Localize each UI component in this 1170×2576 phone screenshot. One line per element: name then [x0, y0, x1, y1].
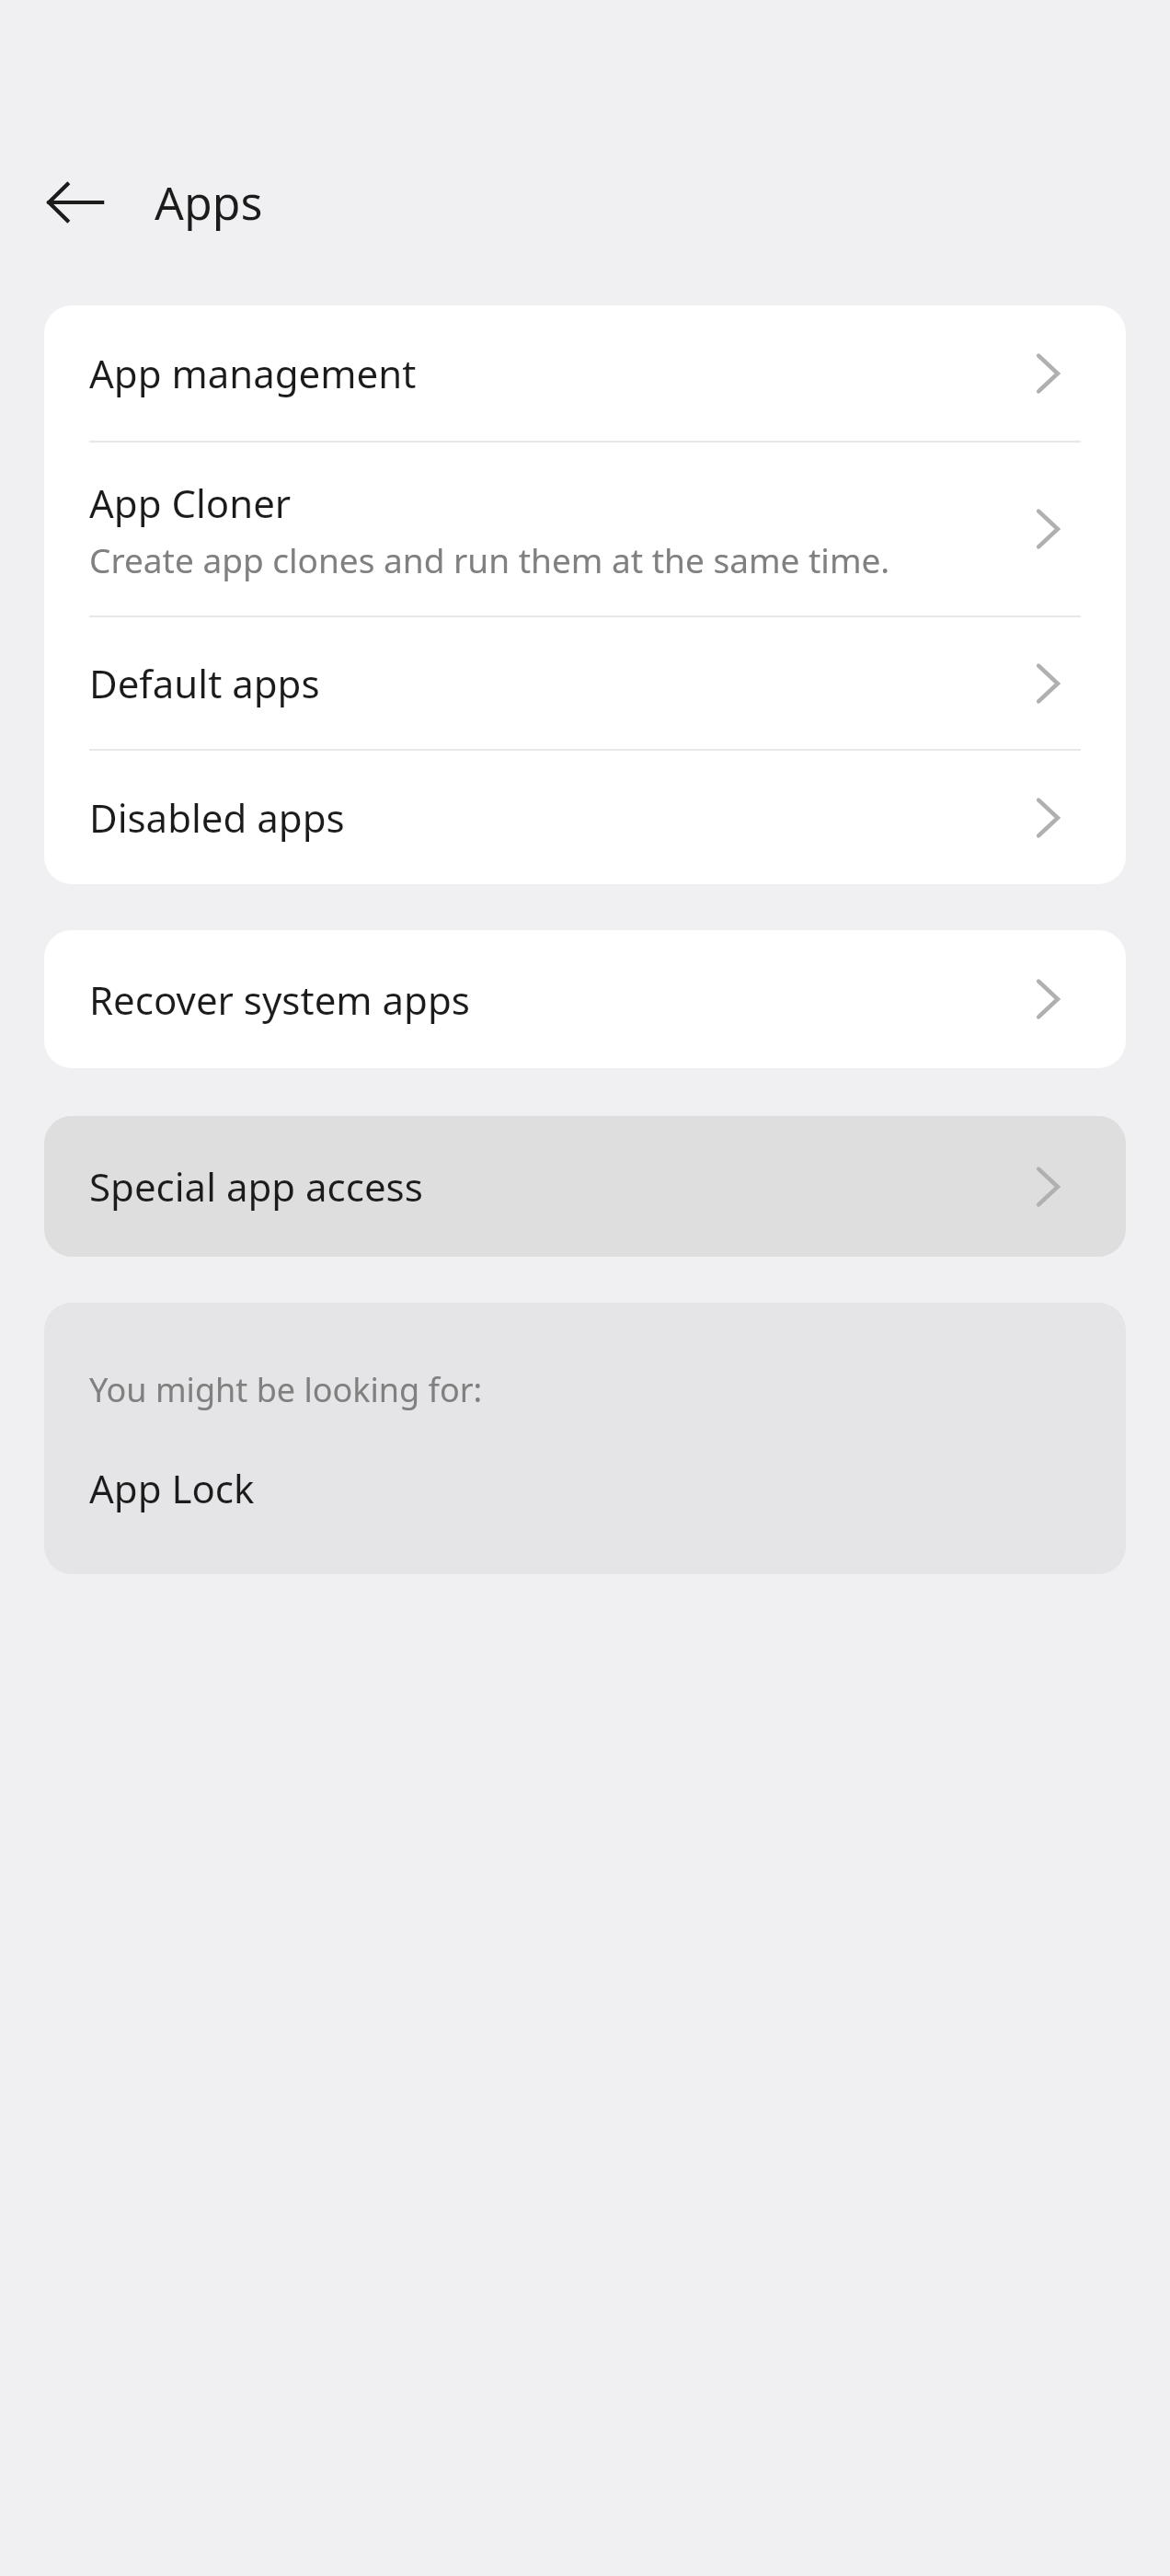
staticText: App Cloner: [89, 477, 292, 529]
staticText: Special app access: [89, 1160, 423, 1213]
button[interactable]: Disabled apps: [44, 751, 1126, 884]
staticText: Default apps: [89, 657, 320, 709]
staticText: You might be looking for:: [89, 1367, 483, 1412]
staticText: App Lock: [89, 1462, 255, 1514]
button[interactable]: App Cloner: [44, 443, 1126, 615]
button[interactable]: Special app access: [44, 1116, 1126, 1257]
staticText: App management: [89, 347, 417, 399]
staticText: Create app clones and run them at the sa…: [89, 536, 890, 582]
staticText: Disabled apps: [89, 791, 345, 844]
button[interactable]: App Lock: [44, 1443, 1126, 1532]
button[interactable]: Default apps: [44, 617, 1126, 749]
staticText: Recover system apps: [89, 973, 470, 1026]
button[interactable]: App management: [44, 305, 1126, 441]
button[interactable]: Back: [24, 155, 127, 250]
staticText: Apps: [155, 171, 263, 234]
button[interactable]: Recover system apps: [44, 930, 1126, 1068]
